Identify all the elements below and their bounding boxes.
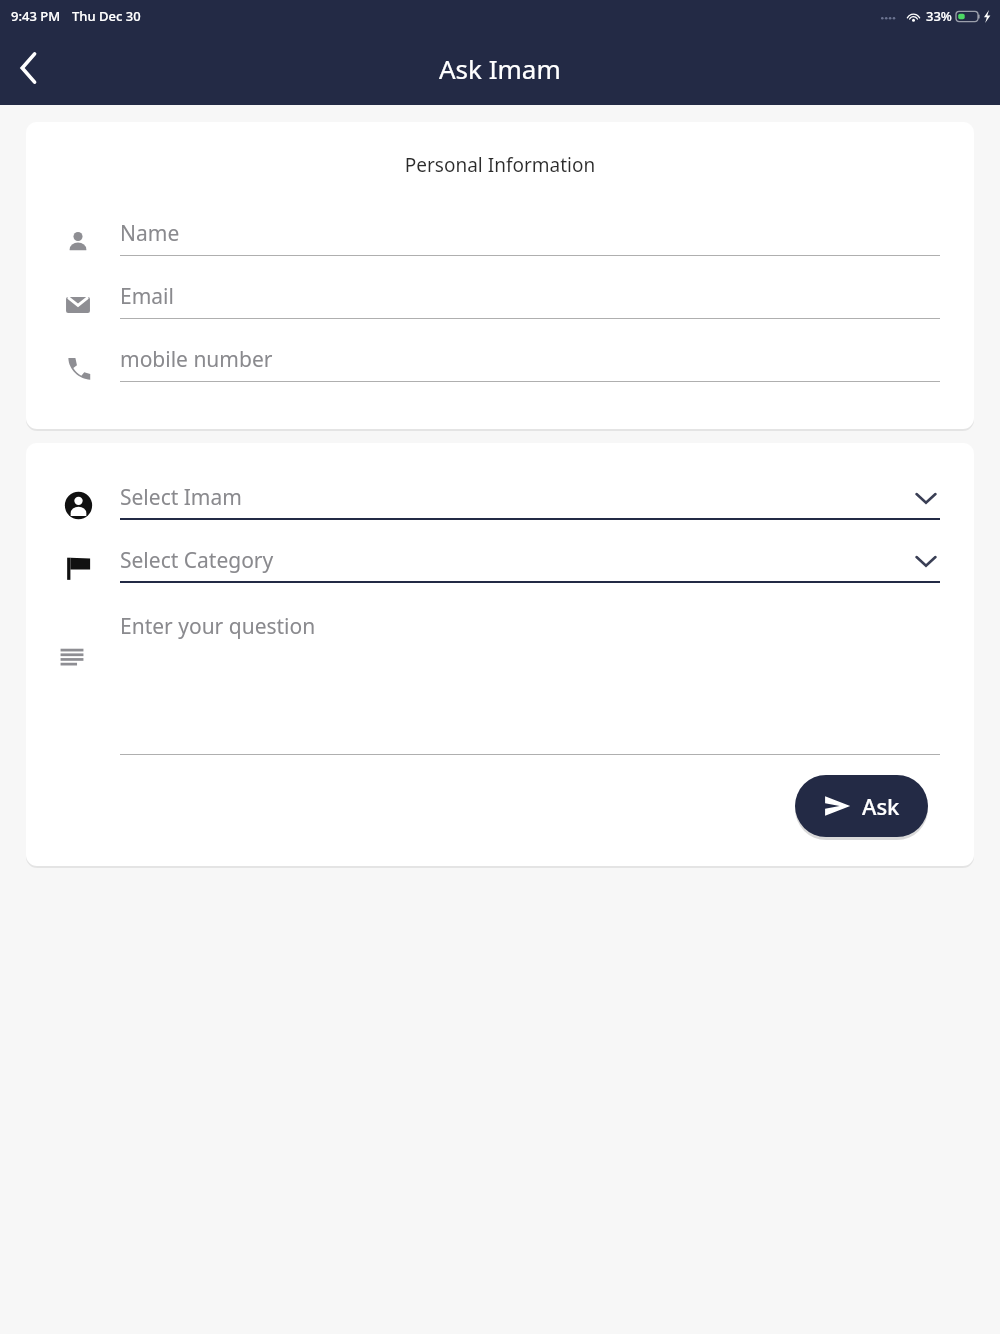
- staticText: Select Category: [120, 546, 274, 575]
- staticText: 33%: [926, 7, 952, 25]
- staticText: Thu Dec 30: [72, 7, 141, 25]
- staticText: Personal Information: [26, 152, 974, 178]
- staticText: Name: [120, 219, 180, 248]
- staticText: Ask Imam: [439, 51, 561, 86]
- staticText: Email: [120, 282, 174, 311]
- staticText: Ask: [862, 791, 900, 821]
- button[interactable]: Enter your question: [26, 600, 974, 755]
- button[interactable]: Back: [0, 39, 58, 97]
- button[interactable]: Email: [26, 273, 974, 336]
- button[interactable]: Name: [26, 210, 974, 273]
- button[interactable]: Ask: [795, 775, 928, 837]
- staticText: Enter your question: [120, 612, 316, 641]
- staticText: Select Imam: [120, 483, 242, 512]
- button[interactable]: Select Imam: [26, 474, 974, 537]
- button[interactable]: mobile number: [26, 336, 974, 399]
- staticText: mobile number: [120, 345, 273, 374]
- button[interactable]: Select Category: [26, 537, 974, 600]
- staticText: 9:43 PM: [11, 7, 61, 25]
